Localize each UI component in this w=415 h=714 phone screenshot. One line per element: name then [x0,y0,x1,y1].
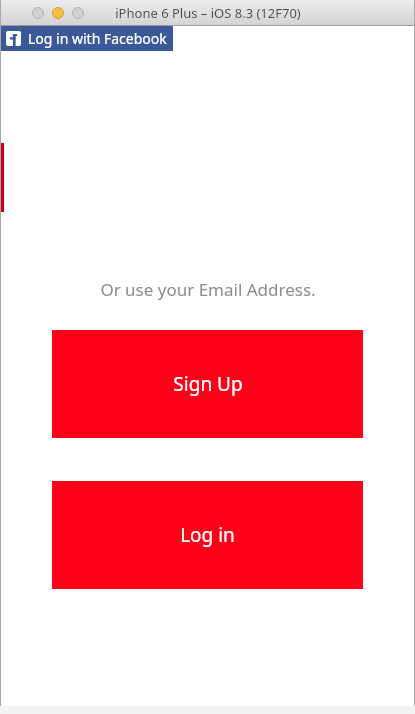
staticText: iPhone 6 Plus – iOS 8.3 (12F70) [115,4,301,22]
button[interactable]: Close window [32,7,44,19]
button[interactable]: Sign Up [52,330,363,438]
staticText: Log in with Facebook [28,29,167,48]
other: Facebook [6,31,21,46]
staticText: Log in [180,522,235,548]
button[interactable]: Minimize window [52,7,64,19]
button[interactable]: Zoom window [72,7,84,19]
button[interactable]: Facebook [0,26,173,51]
staticText: Sign Up [173,371,243,397]
staticText: Or use your Email Address. [100,278,316,301]
button[interactable]: Log in [52,481,363,589]
